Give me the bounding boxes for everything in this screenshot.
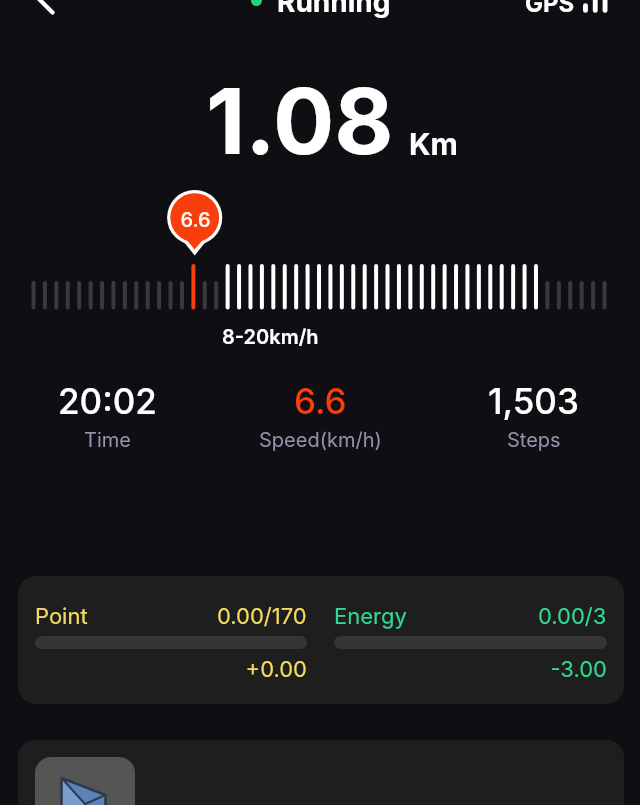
staticText: GPS: [525, 0, 575, 18]
button[interactable]: GPS signal: [579, 0, 611, 14]
staticText: 20:02: [58, 380, 157, 422]
button[interactable]: 6.6: [214, 380, 427, 452]
staticText: 1.08: [206, 66, 394, 176]
staticText: 1,503: [488, 380, 579, 422]
staticText: Steps: [507, 428, 561, 452]
button[interactable]: 20:02: [0, 380, 214, 452]
staticText: Km: [409, 126, 458, 162]
staticText: Energy: [334, 603, 407, 630]
staticText: 6.6: [180, 208, 211, 232]
button[interactable]: Back: [15, 0, 61, 20]
button[interactable]: Point: [18, 576, 624, 704]
staticText: Running: [277, 0, 391, 19]
staticText: Speed(km/h): [259, 428, 382, 452]
other: Route map: [35, 757, 135, 805]
staticText: 8-20km/h: [222, 325, 319, 349]
staticText: +0.00: [35, 656, 307, 683]
staticText: 6.6: [294, 380, 347, 422]
staticText: 0.00/3: [538, 603, 607, 630]
staticText: Point: [35, 603, 88, 630]
staticText: Time: [84, 428, 131, 452]
button[interactable]: 1,503: [427, 380, 640, 452]
button[interactable]: Route map: [18, 740, 624, 805]
staticText: 0.00/170: [217, 603, 307, 630]
staticText: -3.00: [334, 656, 607, 683]
